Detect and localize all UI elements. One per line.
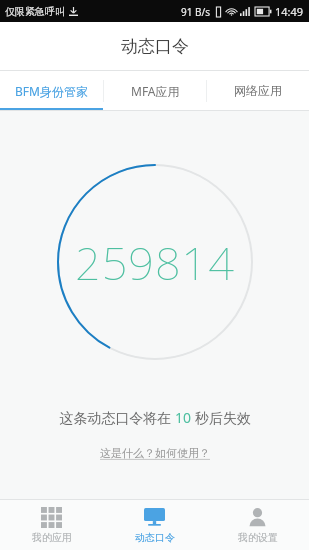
staticText: 我的应用 <box>32 531 72 544</box>
button[interactable]: 我的设置 <box>206 500 309 550</box>
staticText: 动态口令 <box>135 531 175 544</box>
staticText: 259814 <box>75 232 235 293</box>
button[interactable]: 这是什么？如何使用？ <box>94 444 216 462</box>
button[interactable]: MFA应用 <box>104 71 206 110</box>
staticText: BFM身份管家 <box>15 83 88 99</box>
staticText: 仅限紧急呼叫 <box>5 5 65 18</box>
button[interactable]: 网络应用 <box>207 71 309 110</box>
staticText: 91 B/s <box>181 5 211 19</box>
button[interactable]: 我的应用 <box>0 500 103 550</box>
staticText: 14:49 <box>275 4 304 19</box>
button[interactable]: BFM身份管家 <box>0 71 103 110</box>
staticText: 我的设置 <box>238 531 278 544</box>
staticText: 网络应用 <box>234 83 282 98</box>
staticText: MFA应用 <box>131 83 180 99</box>
staticText: 这条动态口令将在 10 秒后失效 <box>59 408 251 427</box>
button[interactable]: 动态口令 <box>103 500 206 550</box>
staticText: 动态口令 <box>121 36 189 57</box>
staticText: 这是什么？如何使用？ <box>100 446 210 460</box>
